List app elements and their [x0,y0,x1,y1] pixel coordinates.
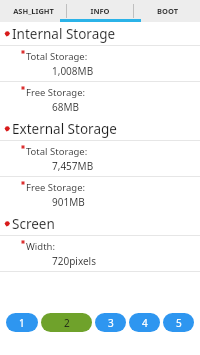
staticText: Total Storage: [26,50,88,63]
staticText: 3 [108,316,114,330]
staticText: 2 [64,316,70,330]
staticText: INFO [90,6,110,16]
staticText: External Storage [12,120,117,138]
staticText: 720pixels [52,254,96,268]
button[interactable]: 3 [95,313,126,332]
staticText: Screen [12,215,55,233]
staticText: Total Storage: [26,145,88,158]
button[interactable]: BOOT [134,0,200,22]
button[interactable]: 2 [41,313,92,332]
staticText: Width: [26,240,55,253]
staticText: 7,457MB [52,159,94,173]
button[interactable]: INFO [67,0,133,22]
staticText: 901MB [52,195,85,209]
staticText: 1 [19,316,25,330]
staticText: Free Storage: [26,86,86,99]
staticText: 68MB [52,100,80,114]
button[interactable]: 4 [129,313,160,332]
staticText: Free Storage: [26,181,86,194]
button[interactable]: ASH_LIGHT [0,0,66,22]
staticText: 4 [142,316,148,330]
staticText: 1,008MB [52,64,94,78]
button[interactable]: 1 [6,313,38,332]
staticText: ASH_LIGHT [13,6,54,16]
staticText: Internal Storage [12,25,116,43]
staticText: 5 [176,316,182,330]
staticText: BOOT [157,6,178,16]
button[interactable]: 5 [163,313,194,332]
